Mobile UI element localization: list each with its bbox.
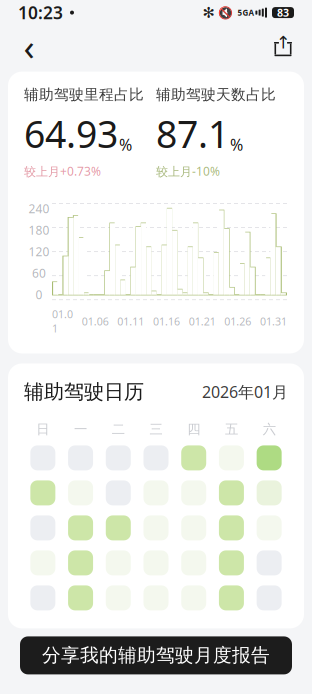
staticText: 87.1	[156, 109, 229, 158]
staticText: 日	[36, 421, 49, 437]
staticText: 01.26	[224, 314, 251, 328]
staticText: 2026年01月	[202, 381, 288, 402]
button[interactable]: 第16天	[62, 515, 99, 540]
staticText: 64.93	[24, 109, 118, 158]
staticText: 0	[35, 287, 42, 303]
button[interactable]: 第34天	[213, 585, 250, 610]
button[interactable]: 第32天	[137, 585, 175, 610]
button[interactable]: 第2天	[62, 445, 99, 470]
staticText: 一	[74, 421, 87, 437]
button[interactable]: 第25天	[137, 550, 175, 575]
staticText: 5GA	[237, 7, 254, 18]
staticText: 01.11	[117, 314, 144, 328]
button[interactable]: 第22天	[24, 550, 62, 575]
button[interactable]: 第35天	[250, 585, 288, 610]
button[interactable]: 第21天	[250, 515, 288, 540]
button[interactable]: 分享我的辅助驾驶月度报告	[20, 636, 292, 674]
button[interactable]: 第14天	[250, 480, 288, 505]
button[interactable]: 第9天	[62, 480, 99, 505]
button[interactable]: 第19天	[175, 515, 213, 540]
button[interactable]: 第10天	[99, 480, 137, 505]
staticText: 辅助驾驶里程占比	[24, 86, 144, 104]
staticText: 四	[187, 421, 200, 437]
button[interactable]: 第29天	[24, 585, 62, 610]
button[interactable]: 第26天	[175, 550, 213, 575]
button[interactable]: 第18天	[137, 515, 175, 540]
button[interactable]: 第33天	[175, 585, 213, 610]
staticText: 10:23	[18, 1, 63, 24]
staticText: 五	[225, 421, 238, 437]
staticText: %	[230, 134, 243, 155]
button[interactable]: 第20天	[213, 515, 250, 540]
button[interactable]: 第8天	[24, 480, 62, 505]
button[interactable]: 第12天	[175, 480, 213, 505]
staticText: 较上月+0.73%	[24, 163, 101, 179]
button[interactable]: 第11天	[137, 480, 175, 505]
staticText: 120	[28, 244, 49, 260]
staticText: 辅助驾驶日历	[24, 379, 144, 404]
staticText: 01.16	[153, 314, 180, 328]
staticText: 较上月-10%	[156, 163, 220, 179]
button[interactable]: 第4天	[137, 445, 175, 470]
staticText: ‹	[23, 23, 34, 70]
staticText: 180	[28, 222, 49, 238]
staticText: 60	[32, 265, 46, 281]
button[interactable]: 第31天	[99, 585, 137, 610]
staticText: 83	[277, 5, 289, 20]
staticText: 01.06	[82, 314, 109, 328]
staticText: 六	[263, 421, 276, 437]
button[interactable]: 第3天	[99, 445, 137, 470]
button[interactable]: 第15天	[24, 515, 62, 540]
button[interactable]: 第5天	[175, 445, 213, 470]
staticText: 三	[149, 421, 162, 437]
staticText: 01.31	[260, 314, 287, 328]
staticText: 01.01	[52, 307, 73, 335]
staticText: %	[119, 134, 132, 155]
staticText: 二	[112, 421, 125, 437]
button[interactable]: Share	[266, 30, 300, 64]
button[interactable]: 第24天	[99, 550, 137, 575]
button[interactable]: 第13天	[213, 480, 250, 505]
staticText: 240	[28, 201, 49, 217]
button[interactable]: 第30天	[62, 585, 99, 610]
button[interactable]: 第23天	[62, 550, 99, 575]
staticText: ↑	[276, 33, 291, 52]
staticText: ✻	[202, 4, 214, 21]
button[interactable]: 第6天	[213, 445, 250, 470]
button[interactable]: 第27天	[213, 550, 250, 575]
staticText: 辅助驾驶天数占比	[156, 86, 276, 104]
button[interactable]: 第28天	[250, 550, 288, 575]
button[interactable]: 第7天	[250, 445, 288, 470]
button[interactable]: Back	[12, 30, 46, 64]
staticText: 分享我的辅助驾驶月度报告	[42, 644, 270, 667]
button[interactable]: 第1天	[24, 445, 62, 470]
button[interactable]: 第17天	[99, 515, 137, 540]
staticText: 01.21	[189, 314, 216, 328]
staticText: 🔇	[218, 6, 233, 19]
